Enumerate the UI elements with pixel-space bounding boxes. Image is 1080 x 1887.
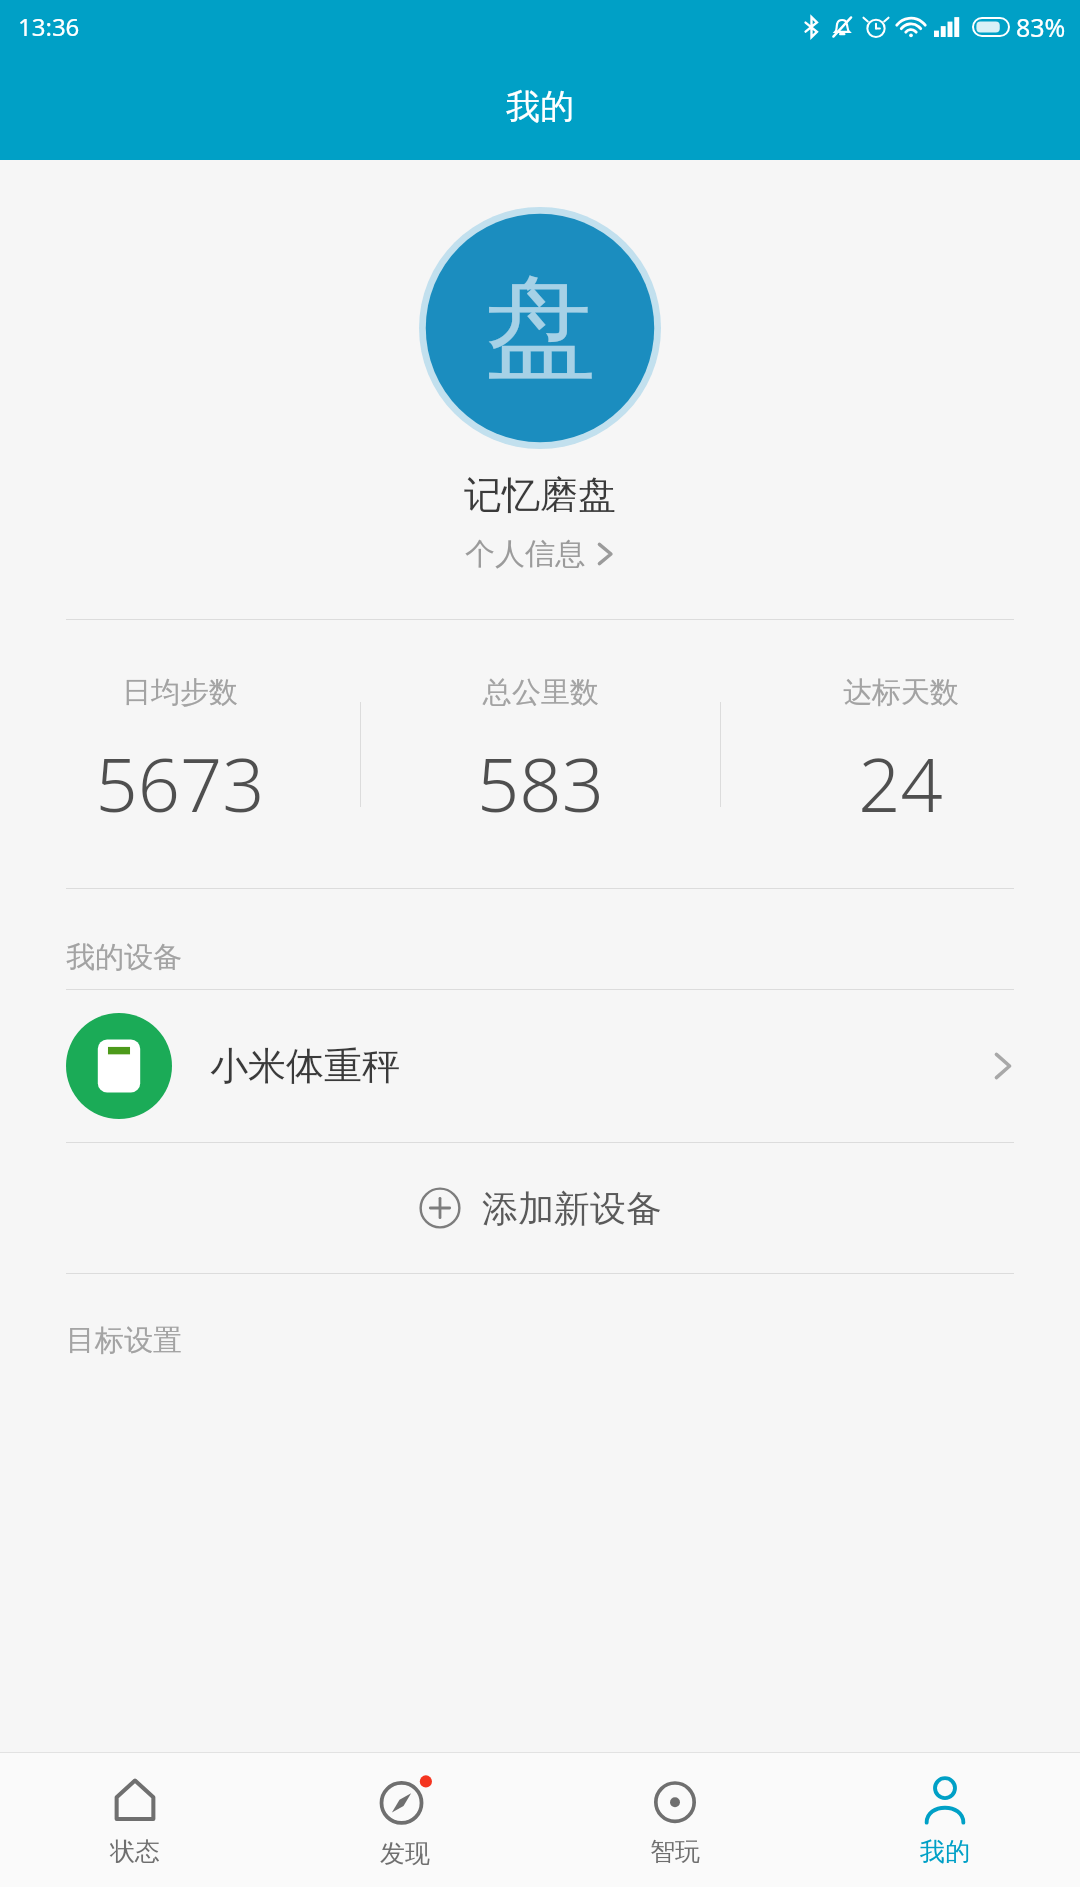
- staticText: 添加新设备: [482, 1186, 662, 1231]
- staticText: 智玩: [650, 1836, 700, 1867]
- staticText: 小米体重秤: [210, 1042, 400, 1090]
- button[interactable]: 发现: [270, 1753, 540, 1887]
- button[interactable]: 总公里数: [361, 620, 720, 888]
- staticText: 记忆磨盘: [464, 471, 616, 519]
- button[interactable]: 达标天数: [721, 620, 1080, 888]
- staticText: 24: [858, 733, 943, 834]
- staticText: 我的: [506, 85, 574, 128]
- staticText: 达标天数: [843, 674, 959, 711]
- staticText: 83%: [1016, 10, 1066, 44]
- staticText: 13:36: [18, 10, 80, 43]
- staticText: 583: [477, 733, 604, 834]
- staticText: 状态: [110, 1836, 160, 1867]
- button[interactable]: 智玩: [540, 1753, 810, 1887]
- button[interactable]: 小米体重秤: [0, 990, 1080, 1142]
- button[interactable]: 日均步数: [0, 620, 360, 888]
- staticText: 我的设备: [66, 939, 182, 976]
- staticText: 个人信息: [465, 535, 585, 573]
- staticText: 发现: [380, 1838, 430, 1869]
- button[interactable]: 我的: [810, 1753, 1080, 1887]
- staticText: 5673: [95, 733, 265, 834]
- button[interactable]: 添加新设备: [0, 1143, 1080, 1273]
- staticText: 目标设置: [66, 1322, 182, 1359]
- staticText: 盘: [484, 258, 596, 399]
- button[interactable]: 盘: [419, 207, 661, 449]
- staticText: 我的: [920, 1836, 970, 1867]
- staticText: 日均步数: [122, 674, 238, 711]
- button[interactable]: 个人信息: [457, 531, 623, 577]
- staticText: 总公里数: [483, 674, 599, 711]
- button[interactable]: 状态: [0, 1753, 270, 1887]
